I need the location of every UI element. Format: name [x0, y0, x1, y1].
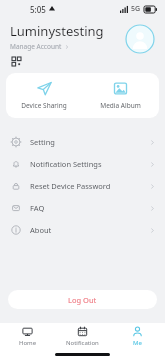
staticText: Me [133, 339, 142, 347]
button[interactable]: Device Sharing [6, 73, 82, 118]
staticText: About [30, 225, 52, 235]
staticText: 5:05 [30, 4, 46, 15]
button[interactable]: Log Out [8, 290, 157, 309]
staticText: FAQ [30, 203, 45, 213]
button[interactable]: Me [110, 323, 165, 350]
staticText: Home [19, 339, 37, 347]
staticText: Manage Account [10, 42, 62, 51]
button[interactable]: About [0, 219, 165, 241]
button[interactable]: Notification Settings [0, 153, 165, 175]
button[interactable]: Notification [55, 323, 110, 350]
staticText: 5G [131, 4, 141, 14]
staticText: Notification Settings [30, 159, 102, 169]
button[interactable]: Setting [0, 131, 165, 153]
button[interactable]: Profile avatar [125, 24, 155, 54]
button[interactable]: Home [0, 323, 55, 350]
staticText: Device Sharing [21, 101, 67, 110]
staticText: Media Album [100, 101, 141, 110]
staticText: Log Out [68, 295, 97, 305]
staticText: Setting [30, 137, 55, 147]
button[interactable]: Media Album [82, 73, 159, 118]
staticText: Luminystesting [10, 22, 104, 40]
button[interactable]: FAQ [0, 197, 165, 219]
button[interactable]: Scan QR code [10, 55, 23, 68]
staticText: Reset Device Password [30, 181, 111, 191]
button[interactable]: Manage Account [10, 42, 69, 51]
button[interactable]: Reset Device Password [0, 175, 165, 197]
staticText: Notification [66, 339, 99, 347]
